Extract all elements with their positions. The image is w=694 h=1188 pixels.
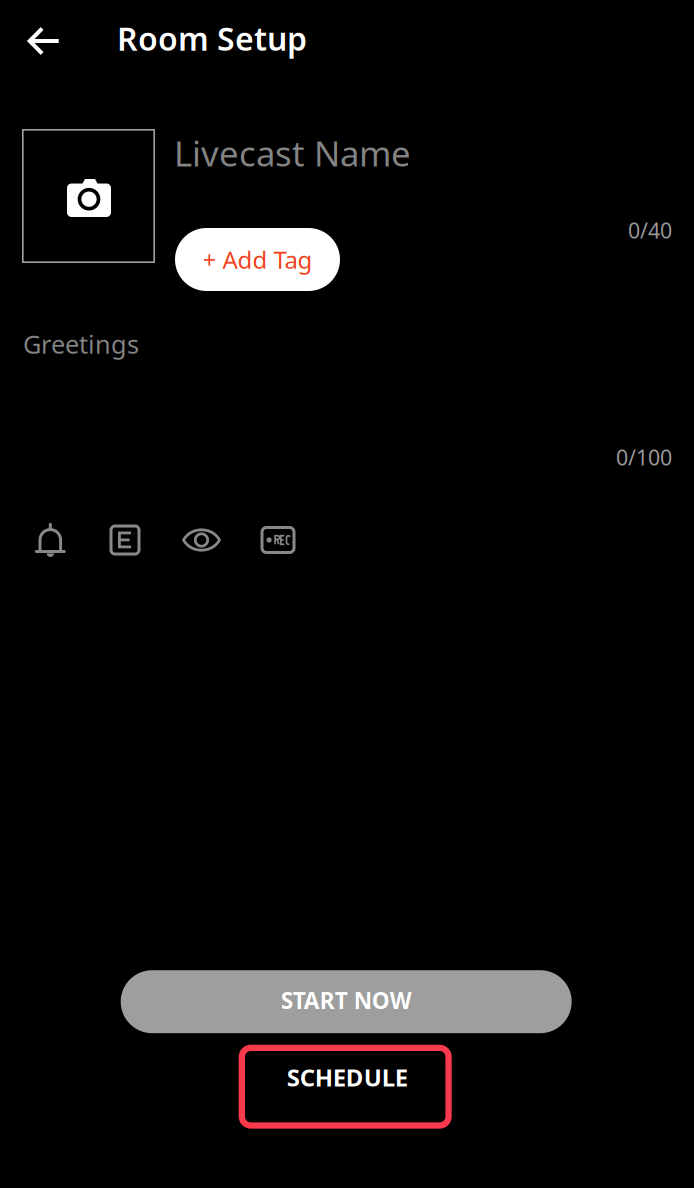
- button[interactable]: Record: [240, 518, 316, 562]
- button[interactable]: Explicit content: [87, 518, 163, 562]
- staticText: SCHEDULE: [287, 1061, 408, 1093]
- staticText: 0/100: [616, 443, 672, 471]
- staticText: START NOW: [281, 985, 412, 1015]
- staticText: 0/40: [628, 216, 672, 244]
- staticText: + Add Tag: [202, 244, 312, 275]
- staticText: Room Setup: [117, 17, 307, 59]
- staticText: Greetings: [23, 327, 139, 361]
- button[interactable]: Back: [15, 14, 73, 68]
- button[interactable]: Visibility: [163, 518, 240, 562]
- button[interactable]: Add cover image: [22, 129, 155, 263]
- button[interactable]: START NOW: [121, 970, 572, 1033]
- staticText: Livecast Name: [174, 130, 411, 176]
- button[interactable]: SCHEDULE: [240, 1046, 453, 1130]
- button[interactable]: Notifications: [13, 518, 87, 562]
- button[interactable]: + Add Tag: [175, 228, 340, 291]
